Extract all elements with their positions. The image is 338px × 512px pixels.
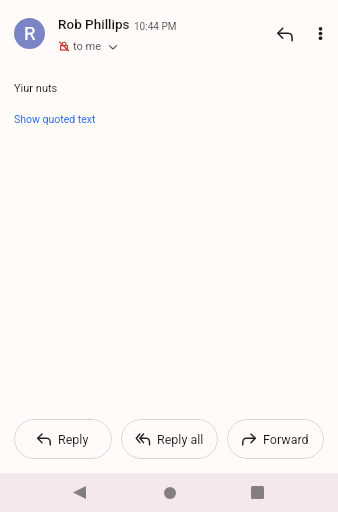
- button[interactable]: Show quoted text: [14, 113, 96, 125]
- button[interactable]: Forward: [227, 419, 324, 459]
- button[interactable]: Back: [57, 473, 102, 512]
- button[interactable]: Home: [147, 473, 192, 512]
- staticText: Reply: [58, 432, 89, 447]
- button[interactable]: Reply all: [121, 419, 218, 459]
- staticText: R: [24, 23, 36, 45]
- button[interactable]: Reply: [14, 419, 112, 459]
- staticText: Yiur nuts: [14, 82, 58, 95]
- staticText: Forward: [263, 432, 309, 447]
- button[interactable]: to me: [59, 40, 118, 53]
- staticText: to me: [73, 40, 101, 53]
- staticText: Rob Phillips: [58, 16, 130, 32]
- button[interactable]: More options: [306, 18, 335, 47]
- button[interactable]: Reply: [270, 19, 300, 49]
- button[interactable]: Recent apps: [235, 473, 280, 512]
- button[interactable]: Sender avatar: [14, 18, 45, 49]
- staticText: Reply all: [157, 432, 204, 447]
- staticText: 10:44 PM: [134, 21, 177, 33]
